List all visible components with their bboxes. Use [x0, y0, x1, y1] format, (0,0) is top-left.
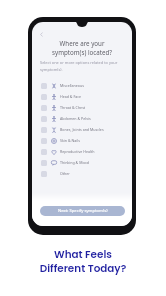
staticText: Thinking & Mood	[60, 160, 89, 165]
button[interactable]: Next: Specify symptom(s)	[40, 206, 125, 216]
staticText: Next: Specify symptom(s)	[58, 208, 108, 214]
button[interactable]: Miscellaneous	[32, 80, 132, 91]
button[interactable]: Skin & Nails	[32, 135, 132, 146]
button[interactable]: Throat & Chest	[32, 102, 132, 113]
staticText: Other	[60, 171, 70, 176]
button[interactable]: Bones, Joints and Muscles	[32, 124, 132, 135]
staticText: Abdomen & Pelvis	[60, 116, 91, 121]
staticText: Bones, Joints and Muscles	[60, 127, 104, 132]
staticText: Skin & Nails	[60, 138, 80, 143]
staticText: Select one or more options related to yo…	[40, 60, 118, 72]
button[interactable]: Reproductive Health	[32, 146, 132, 157]
staticText: Head & Face	[60, 94, 82, 99]
staticText: Where are your symptom(s) located?	[38, 39, 126, 57]
button[interactable]: Thinking & Mood	[32, 157, 132, 168]
staticText: Throat & Chest	[60, 105, 86, 110]
staticText: What Feels Different Today?	[0, 247, 166, 276]
staticText: Miscellaneous	[60, 83, 84, 88]
button[interactable]: Other	[32, 168, 132, 179]
staticText: Reproductive Health	[60, 149, 95, 154]
button[interactable]: Abdomen & Pelvis	[32, 113, 132, 124]
button[interactable]: Back	[35, 28, 47, 40]
button[interactable]: Head & Face	[32, 91, 132, 102]
